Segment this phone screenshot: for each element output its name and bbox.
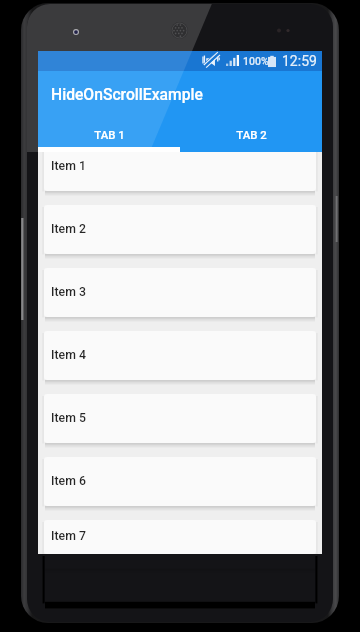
staticText: HideOnScrollExample [51, 85, 203, 103]
staticText: Item 4 [51, 348, 86, 362]
button[interactable]: TAB 1 [38, 116, 180, 152]
button[interactable]: Item 5 [44, 394, 316, 443]
button[interactable]: Item 3 [44, 268, 316, 317]
button[interactable]: TAB 2 [180, 116, 322, 152]
staticText: Item 7 [51, 529, 86, 543]
button[interactable]: Item 7 [44, 520, 316, 554]
button[interactable]: Item 1 [44, 142, 316, 191]
button[interactable]: Item 6 [44, 457, 316, 506]
staticText: TAB 1 [94, 128, 125, 141]
button[interactable]: Item 2 [44, 205, 316, 254]
staticText: Item 5 [51, 411, 86, 425]
button[interactable]: Item 4 [44, 331, 316, 380]
staticText: 100% [243, 55, 269, 67]
staticText: Item 6 [51, 474, 86, 488]
staticText: TAB 2 [236, 128, 267, 141]
staticText: Item 3 [51, 285, 86, 299]
staticText: 12:59 [282, 53, 317, 69]
staticText: Item 1 [51, 159, 86, 173]
staticText: Item 2 [51, 222, 86, 236]
